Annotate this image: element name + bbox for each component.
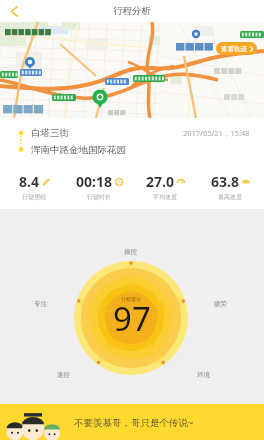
staticText: 平均速度: [153, 193, 177, 201]
button[interactable]: 63.8: [199, 172, 261, 201]
staticText: 行程分析: [113, 5, 151, 17]
staticText: 环境: [197, 371, 210, 379]
staticText: 行程得分: [121, 296, 141, 302]
staticText: 浑南中路金地国际花园: [31, 144, 126, 156]
staticText: 00:18: [76, 172, 112, 191]
staticText: 27.0: [146, 172, 174, 191]
button[interactable]: 行程得分: [0, 209, 264, 404]
button[interactable]: Back: [0, 0, 28, 22]
button[interactable]: 27.0: [134, 172, 196, 201]
button[interactable]: 00:18: [68, 172, 130, 201]
button[interactable]: 查看轨迹: [216, 42, 257, 55]
staticText: 97: [113, 296, 151, 340]
staticText: 63.8: [211, 172, 239, 191]
staticText: 专注: [34, 300, 47, 308]
staticText: 白塔三街: [31, 127, 69, 139]
staticText: 速控: [57, 371, 70, 379]
button[interactable]: 8.4: [3, 172, 65, 201]
staticText: 疲劳: [214, 300, 227, 308]
staticText: 查看轨迹: [221, 45, 247, 53]
staticText: 2017/05/21，15:48: [183, 128, 250, 138]
staticText: 不要羡慕哥，哥只是个传说~: [74, 416, 194, 429]
staticText: 8.4: [19, 172, 39, 191]
staticText: 操控: [124, 248, 137, 256]
button[interactable]: 不要羡慕哥，哥只是个传说~: [0, 404, 264, 440]
staticText: 行驶里程: [22, 193, 46, 201]
staticText: 最高速度: [218, 193, 242, 201]
staticText: 行驶时长: [87, 193, 111, 201]
